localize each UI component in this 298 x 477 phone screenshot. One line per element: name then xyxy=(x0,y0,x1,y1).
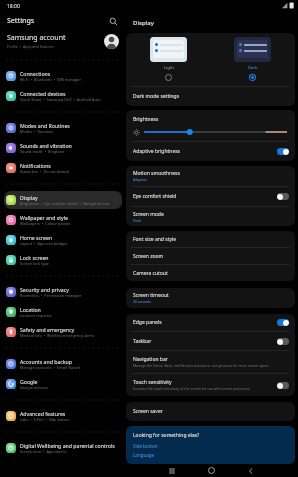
staticText: Location xyxy=(20,306,41,313)
button[interactable]: Home xyxy=(205,464,218,477)
staticText: Settings xyxy=(7,16,35,26)
button[interactable]: Connections xyxy=(4,67,122,85)
staticText: Digital Wellbeing and parental controls xyxy=(20,442,115,449)
button[interactable]: Accounts and backup xyxy=(4,355,122,373)
button[interactable]: Home screen xyxy=(4,231,122,249)
staticText: Language xyxy=(133,452,155,458)
staticText: Edge panels xyxy=(133,319,162,326)
button[interactable]: Search xyxy=(107,15,119,27)
button[interactable]: Dark xyxy=(234,33,271,81)
button[interactable]: Font size and style xyxy=(126,231,295,247)
staticText: Wi-Fi • Bluetooth • SIM manager xyxy=(20,77,82,82)
staticText: Layout • App icon badges xyxy=(20,241,68,246)
staticText: Dark mode settings xyxy=(133,93,180,100)
button[interactable]: Recents xyxy=(165,464,178,477)
staticText: Display xyxy=(20,194,38,201)
button[interactable]: Safety and emergency xyxy=(4,323,122,341)
staticText: Sound mode • Ringtone xyxy=(20,149,65,154)
button[interactable]: Eye comfort shield xyxy=(126,187,295,206)
staticText: Connected devices xyxy=(20,90,66,97)
staticText: Connections xyxy=(20,70,51,77)
button[interactable]: Display xyxy=(4,191,122,209)
button[interactable]: Security and privacy xyxy=(4,283,122,301)
staticText: Lock screen xyxy=(20,254,49,261)
button[interactable]: Connected devices xyxy=(4,87,122,105)
button[interactable]: Location xyxy=(4,303,122,321)
button[interactable]: Touch sensitivity xyxy=(277,382,289,389)
button[interactable]: Digital Wellbeing and parental controls xyxy=(4,439,122,457)
staticText: Labs • S Pen • Side button xyxy=(20,417,70,422)
staticText: Manage accounts • Smart Switch xyxy=(20,365,81,370)
staticText: Location requests xyxy=(20,313,52,318)
staticText: Google services xyxy=(20,385,49,390)
staticText: Status bar • Do not disturb xyxy=(20,169,70,174)
button[interactable]: Adaptive brightness xyxy=(277,148,289,155)
staticText: Screen mode xyxy=(133,211,164,218)
staticText: Modes • Routines xyxy=(20,129,54,134)
staticText: Google xyxy=(20,378,38,385)
staticText: Screen zoom xyxy=(133,253,164,260)
staticText: Eye comfort shield xyxy=(133,193,177,200)
staticText: Taskbar xyxy=(133,338,152,345)
button[interactable]: Adaptive brightness xyxy=(126,142,295,161)
staticText: Samsung account xyxy=(7,33,66,43)
staticText: Side button xyxy=(133,443,158,449)
staticText: Touch sensitivity xyxy=(133,379,172,386)
button[interactable]: Edge panels xyxy=(277,319,289,326)
staticText: Increase the touch sensitivity of the sc… xyxy=(133,386,251,391)
staticText: Looking for something else? xyxy=(133,432,200,439)
staticText: 18:00 xyxy=(7,3,20,10)
staticText: Notifications xyxy=(20,162,51,169)
button[interactable]: Taskbar xyxy=(277,338,289,345)
staticText: Brightness • Eye comfort shield • Naviga… xyxy=(20,201,110,206)
button[interactable]: Eye comfort shield xyxy=(277,193,289,200)
staticText: Accounts and backup xyxy=(20,358,72,365)
staticText: Brightness xyxy=(133,116,159,123)
button[interactable]: Screen saver xyxy=(126,402,295,421)
button[interactable]: Advanced features xyxy=(4,407,122,425)
button[interactable]: Edge panels xyxy=(126,314,295,331)
button[interactable]: Touch sensitivity xyxy=(126,374,295,396)
staticText: Security and privacy xyxy=(20,286,69,293)
button[interactable]: Camera cutout xyxy=(126,265,295,281)
button[interactable]: Wallpaper and style xyxy=(4,211,122,229)
button[interactable]: Notifications xyxy=(4,159,122,177)
staticText: Profile • Apps and features xyxy=(7,44,54,49)
staticText: Wallpapers • Colour palette xyxy=(20,221,71,226)
staticText: Font size and style xyxy=(133,236,177,243)
staticText: Screen lock type xyxy=(20,261,49,266)
staticText: Sounds and vibration xyxy=(20,142,72,149)
staticText: Light xyxy=(164,65,174,71)
staticText: Display xyxy=(133,19,154,27)
button[interactable]: Dark mode settings xyxy=(126,87,295,106)
staticText: Medical info • Wireless emergency alerts xyxy=(20,333,94,338)
button[interactable]: Looking for something else? xyxy=(126,426,295,464)
button[interactable]: Motion smoothness xyxy=(126,166,295,186)
staticText: Modes and Routines xyxy=(20,122,70,129)
staticText: Quick Share • Samsung DeX • Android Auto xyxy=(20,97,101,102)
staticText: Biometrics • Permission manager xyxy=(20,293,82,298)
staticText: Home screen xyxy=(20,234,53,241)
staticText: Advanced features xyxy=(20,410,66,417)
staticText: Manage the Home, Back, and Recents butto… xyxy=(133,363,270,368)
button[interactable]: Screen zoom xyxy=(126,248,295,264)
staticText: Wallpaper and style xyxy=(20,214,68,221)
button[interactable]: Screen mode xyxy=(126,207,295,226)
staticText: Dark xyxy=(248,65,258,71)
staticText: Screen time • App timers xyxy=(20,449,66,454)
staticText: Adaptive brightness xyxy=(133,148,181,155)
button[interactable]: Navigation bar xyxy=(126,351,295,373)
staticText: Vivid xyxy=(133,218,141,223)
staticText: Screen saver xyxy=(133,408,163,415)
button[interactable]: Lock screen xyxy=(4,251,122,269)
button[interactable]: Google xyxy=(4,375,122,393)
button[interactable]: Modes and Routines xyxy=(4,119,122,137)
button[interactable]: Back xyxy=(244,464,257,477)
button[interactable]: Samsung account xyxy=(0,28,125,54)
button[interactable]: Taskbar xyxy=(126,332,295,350)
button[interactable]: Screen timeout xyxy=(126,288,295,308)
button[interactable]: Light xyxy=(150,33,187,81)
button[interactable]: Sounds and vibration xyxy=(4,139,122,157)
staticText: Safety and emergency xyxy=(20,326,75,333)
staticText: Navigation bar xyxy=(133,356,168,363)
